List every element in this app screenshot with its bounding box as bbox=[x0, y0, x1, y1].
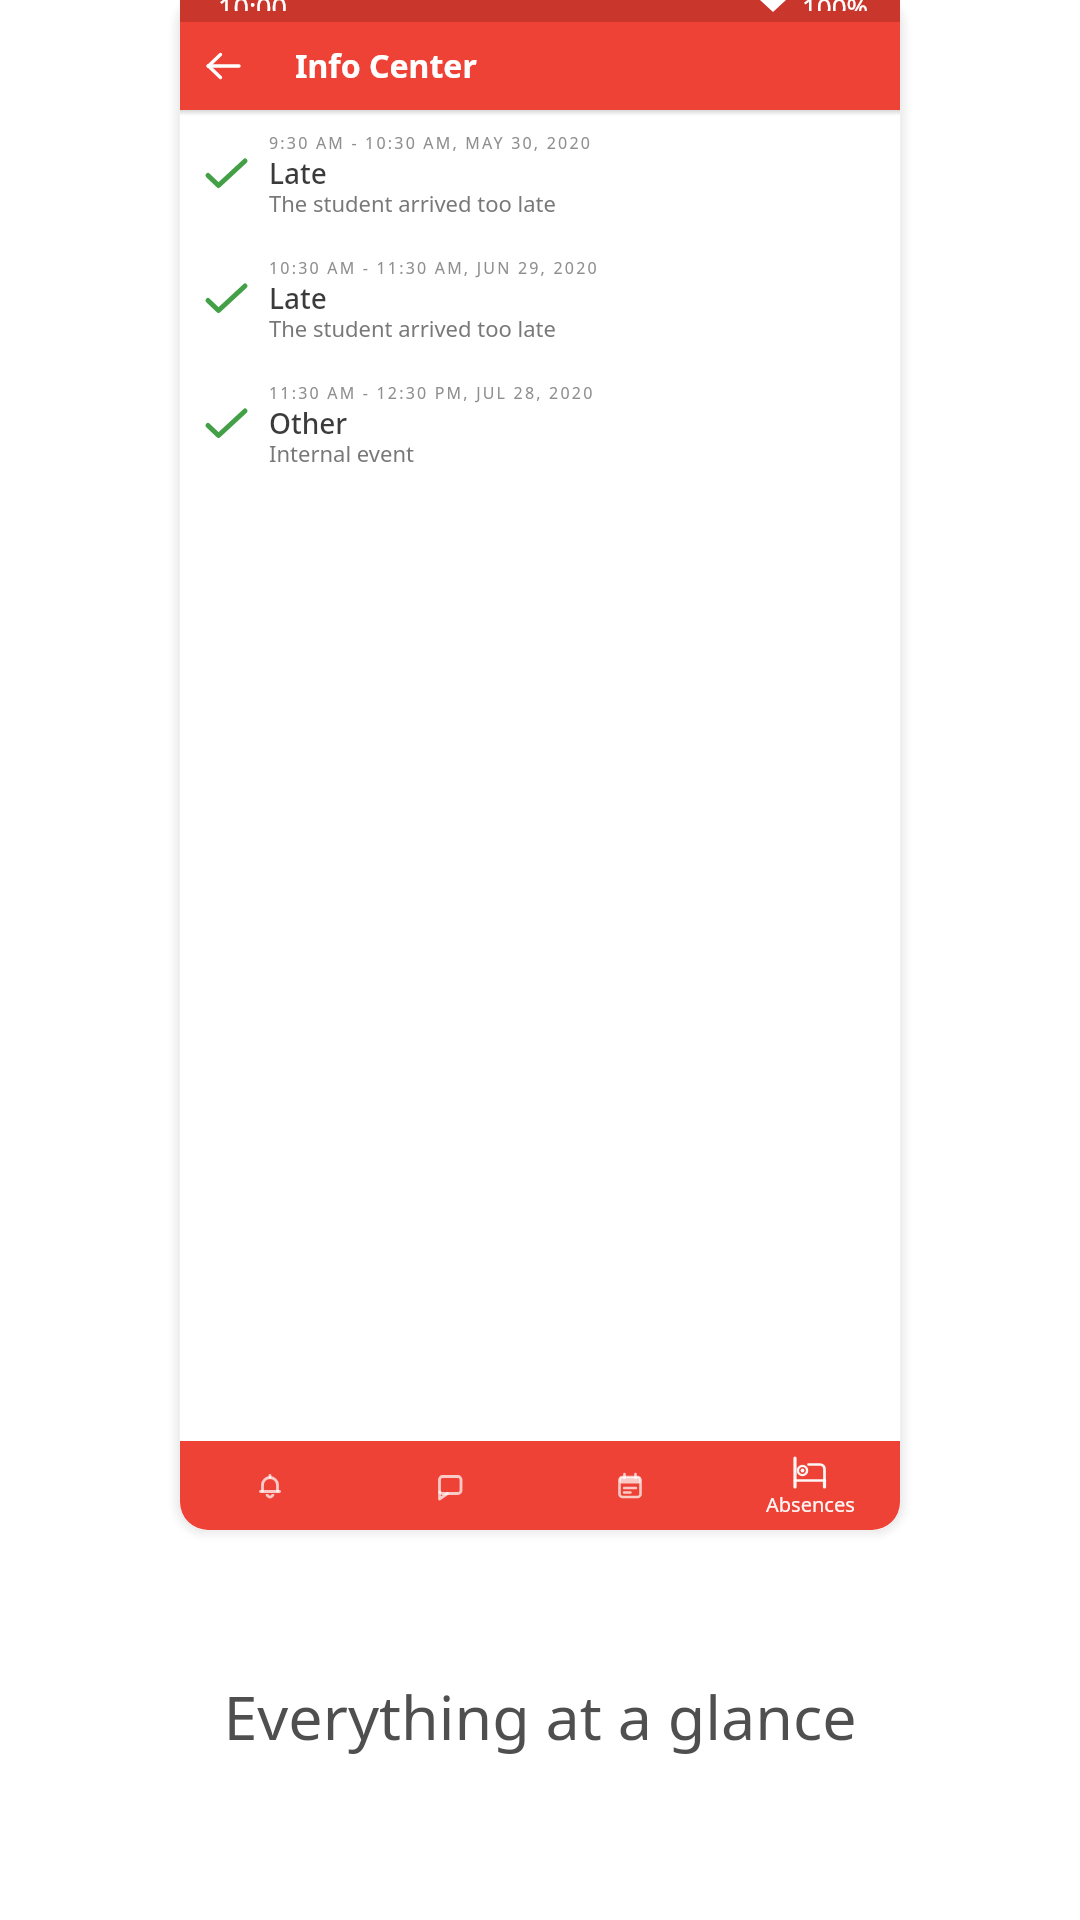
button[interactable] bbox=[360, 1441, 540, 1530]
staticText: 11:30 AM - 12:30 PM, JUL 28, 2020 bbox=[269, 382, 595, 404]
staticText: The student arrived too late bbox=[269, 313, 556, 343]
button[interactable] bbox=[540, 1441, 720, 1530]
button[interactable]: 10:30 AM - 11:30 AM, JUN 29, 2020 bbox=[180, 256, 900, 381]
button[interactable]: 9:30 AM - 10:30 AM, MAY 30, 2020 bbox=[180, 131, 900, 256]
staticText: 10:00 bbox=[218, 0, 288, 11]
staticText: 10:30 AM - 11:30 AM, JUN 29, 2020 bbox=[269, 257, 599, 279]
staticText: Late bbox=[269, 279, 327, 317]
staticText: 9:30 AM - 10:30 AM, MAY 30, 2020 bbox=[269, 132, 593, 154]
button[interactable]: 11:30 AM - 12:30 PM, JUL 28, 2020 bbox=[180, 381, 900, 506]
staticText: 100% bbox=[802, 0, 869, 11]
staticText: Late bbox=[269, 154, 327, 192]
staticText: Info Center bbox=[295, 44, 477, 88]
staticText: The student arrived too late bbox=[269, 188, 556, 218]
button[interactable] bbox=[180, 22, 268, 110]
staticText: Other bbox=[269, 404, 348, 442]
staticText: Absences bbox=[766, 1491, 855, 1518]
staticText: Internal event bbox=[269, 438, 414, 468]
staticText: Everything at a glance bbox=[0, 1675, 1080, 1758]
button[interactable]: Absences bbox=[720, 1441, 900, 1530]
button[interactable] bbox=[180, 1441, 360, 1530]
